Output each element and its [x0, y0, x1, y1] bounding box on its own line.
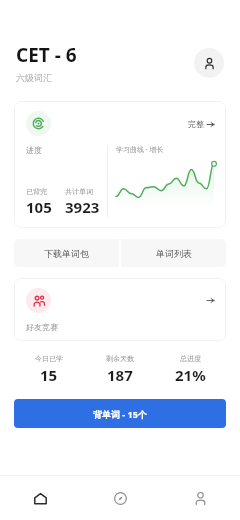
button[interactable]: 总进度 — [155, 354, 226, 385]
button[interactable]: 完整 — [188, 119, 214, 129]
staticText: 六级词汇 — [16, 72, 52, 83]
button[interactable]: 完整 — [14, 101, 226, 228]
staticText: 15 — [40, 365, 58, 385]
button[interactable]: Profile — [194, 48, 224, 78]
button[interactable]: Profile — [160, 476, 240, 520]
staticText: 105 — [26, 197, 52, 217]
button[interactable]: 背单词 - 15个 — [14, 399, 226, 428]
button[interactable]: 剩余天数 — [84, 354, 155, 385]
button[interactable]: Home — [0, 476, 80, 520]
staticText: 187 — [107, 365, 133, 385]
staticText: 完整 — [188, 119, 204, 129]
staticText: 背单词 - 15个 — [93, 408, 147, 420]
staticText: 3923 — [65, 197, 100, 217]
staticText: 进度 — [26, 145, 42, 155]
staticText: 今日已学 — [35, 354, 63, 363]
staticText: 总进度 — [180, 354, 201, 363]
staticText: 学习曲线 · 增长 — [116, 145, 164, 155]
staticText: CET - 6 — [16, 42, 77, 68]
staticText: 好友竞赛 — [26, 322, 58, 332]
button[interactable]: 单词列表 — [121, 239, 226, 267]
button[interactable]: 好友竞赛 — [14, 278, 226, 341]
staticText: 剩余天数 — [106, 354, 134, 363]
staticText: 下载单词包 — [44, 248, 89, 259]
staticText: 单词列表 — [156, 248, 192, 259]
staticText: 共计单词 — [65, 187, 93, 196]
button[interactable]: 今日已学 — [14, 354, 84, 385]
button[interactable]: 下载单词包 — [14, 239, 119, 267]
staticText: 21% — [175, 365, 206, 385]
button[interactable]: Explore — [80, 476, 160, 520]
staticText: 已背完 — [26, 187, 47, 196]
